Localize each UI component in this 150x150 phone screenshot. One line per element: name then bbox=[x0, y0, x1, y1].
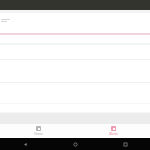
button[interactable]: Home bbox=[50, 138, 100, 150]
staticText: Home bbox=[34, 132, 43, 136]
staticText: Alerts bbox=[109, 132, 118, 136]
button[interactable]: Recent apps bbox=[100, 138, 150, 150]
button[interactable] bbox=[0, 17, 150, 24]
button[interactable]: Alerts bbox=[98, 124, 128, 138]
button[interactable]: Home bbox=[23, 124, 53, 138]
button[interactable]: Back bbox=[0, 138, 50, 150]
